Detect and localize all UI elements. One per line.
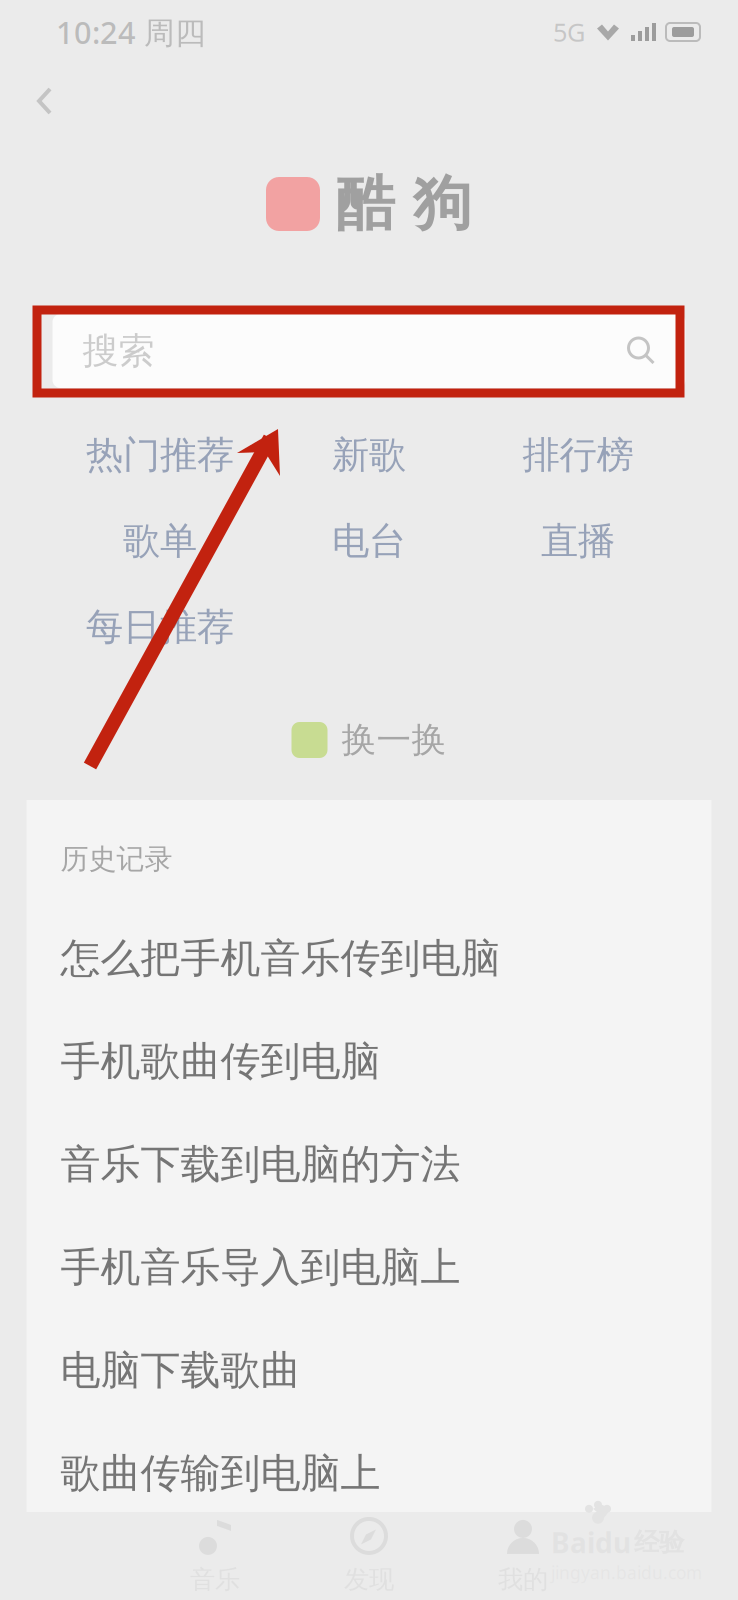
- button[interactable]: 直播: [473, 514, 682, 568]
- staticText: 音乐: [190, 1564, 240, 1595]
- staticText: 电台: [332, 518, 406, 564]
- staticText: 我的: [498, 1564, 548, 1595]
- button[interactable]: 我的: [446, 1510, 600, 1600]
- button[interactable]: 排行榜: [473, 428, 682, 482]
- staticText: 排行榜: [522, 432, 633, 478]
- staticText: 酷 狗: [336, 168, 472, 240]
- button[interactable]: 电脑下载歌曲: [26, 1319, 711, 1422]
- button[interactable]: 手机歌曲传到电脑: [26, 1010, 711, 1113]
- button[interactable]: 音乐下载到电脑的方法: [26, 1113, 711, 1216]
- staticText: 歌曲传输到电脑上: [60, 1449, 380, 1498]
- staticText: 经验: [634, 1527, 684, 1558]
- staticText: 歌单: [123, 518, 197, 564]
- button[interactable]: 发现: [292, 1510, 446, 1600]
- staticText: 电脑下载歌曲: [60, 1346, 300, 1395]
- button[interactable]: 音乐: [138, 1510, 292, 1600]
- staticText: 手机歌曲传到电脑: [60, 1037, 380, 1086]
- staticText: 手机音乐导入到电脑上: [60, 1243, 460, 1292]
- button[interactable]: 搜索: [52, 314, 685, 388]
- button[interactable]: 每日推荐: [55, 600, 264, 654]
- button[interactable]: 新歌: [264, 428, 473, 482]
- staticText: 每日推荐: [86, 604, 234, 650]
- button[interactable]: 歌单: [55, 514, 264, 568]
- button[interactable]: 换一换: [291, 718, 446, 762]
- button[interactable]: 返回: [12, 64, 77, 138]
- button[interactable]: 电台: [264, 514, 473, 568]
- button[interactable]: 怎么把手机音乐传到电脑: [26, 907, 711, 1010]
- staticText: 直播: [541, 518, 615, 564]
- staticText: 发现: [344, 1564, 394, 1595]
- button[interactable]: 热门推荐: [55, 428, 264, 482]
- staticText: 换一换: [341, 719, 446, 761]
- staticText: 10:24 周四: [56, 12, 206, 52]
- staticText: Baidu: [551, 1524, 631, 1561]
- button[interactable]: 手机音乐导入到电脑上: [26, 1216, 711, 1319]
- staticText: 音乐下载到电脑的方法: [60, 1140, 460, 1189]
- staticText: 新歌: [332, 432, 406, 478]
- staticText: 历史记录: [60, 842, 172, 876]
- staticText: 搜索: [82, 329, 154, 373]
- button[interactable]: 歌曲传输到电脑上: [26, 1422, 711, 1525]
- staticText: 怎么把手机音乐传到电脑: [60, 934, 500, 983]
- staticText: 5G: [553, 15, 585, 49]
- staticText: 热门推荐: [86, 432, 234, 478]
